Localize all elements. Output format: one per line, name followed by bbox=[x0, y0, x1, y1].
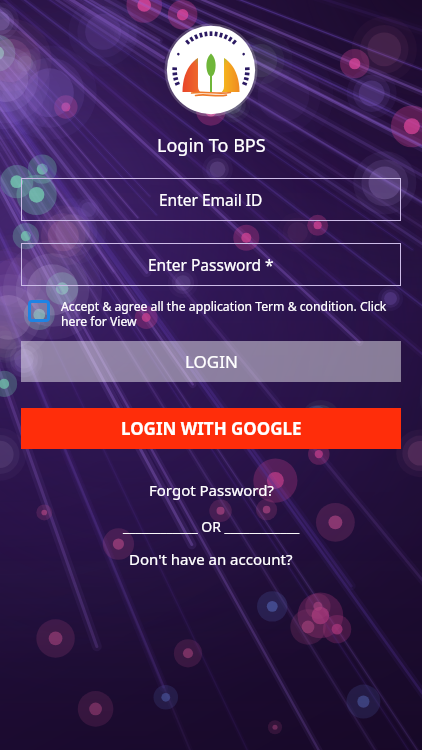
staticText: ____________ OR ____________ bbox=[123, 517, 300, 536]
button[interactable]: LOGIN WITH GOOGLE bbox=[21, 408, 401, 449]
button[interactable]: Enter Password * bbox=[21, 243, 401, 286]
staticText: Accept & agree all the application Term … bbox=[61, 298, 404, 329]
button[interactable]: Enter Email ID bbox=[21, 178, 401, 221]
staticText: Enter Email ID bbox=[159, 189, 263, 210]
staticText: Enter Password * bbox=[148, 254, 274, 275]
button[interactable]: LOGIN bbox=[21, 341, 401, 382]
staticText: Login To BPS bbox=[157, 133, 266, 158]
staticText: Don't have an account? bbox=[129, 549, 293, 569]
button[interactable]: Forgot Password? bbox=[139, 477, 284, 503]
staticText: LOGIN bbox=[185, 350, 238, 373]
staticText: LOGIN WITH GOOGLE bbox=[121, 417, 302, 440]
button[interactable]: Accept terms and conditions bbox=[28, 298, 404, 329]
other: Accept terms and conditions bbox=[28, 300, 50, 322]
staticText: Forgot Password? bbox=[149, 480, 274, 500]
button[interactable]: Don't have an account? bbox=[119, 546, 303, 572]
